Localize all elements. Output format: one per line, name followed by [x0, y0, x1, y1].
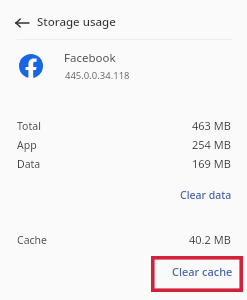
staticText: 254 MB [192, 137, 231, 152]
staticText: Cache [17, 233, 47, 247]
staticText: Data [17, 157, 41, 171]
staticText: Clear data [180, 188, 232, 202]
staticText: Storage usage [37, 14, 116, 30]
staticText: 40.2 MB [189, 232, 231, 247]
staticText: 445.0.0.34.118 [65, 69, 130, 82]
button[interactable]: Clear data [174, 185, 238, 205]
button[interactable]: Clear cache [151, 256, 243, 292]
button[interactable]: Back [9, 10, 34, 35]
staticText: Total [17, 119, 41, 133]
staticText: 463 MB [192, 118, 231, 133]
staticText: Clear cache [172, 264, 233, 279]
staticText: Facebook [64, 50, 116, 66]
button[interactable]: Facebook [0, 40, 247, 92]
staticText: App [17, 138, 37, 152]
staticText: 169 MB [192, 156, 231, 171]
